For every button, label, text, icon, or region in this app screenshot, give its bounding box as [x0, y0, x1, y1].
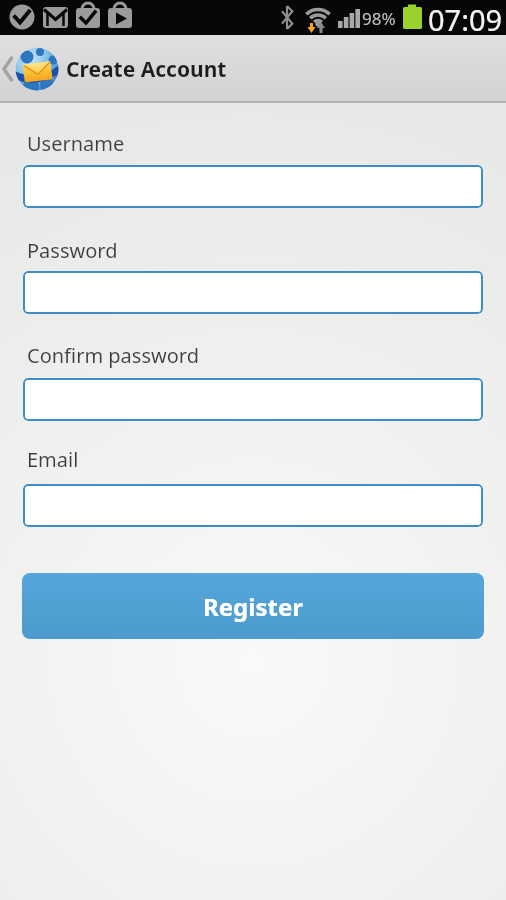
staticText: Username: [27, 130, 125, 157]
button[interactable]: Register: [22, 573, 484, 639]
staticText: Create Account: [66, 55, 227, 84]
staticText: Register: [203, 590, 303, 623]
staticText: Email: [27, 446, 79, 473]
button[interactable]: [23, 271, 483, 314]
staticText: 07:09: [428, 0, 503, 35]
staticText: Password: [27, 237, 118, 264]
button[interactable]: [23, 484, 483, 527]
button[interactable]: [23, 165, 483, 208]
button[interactable]: [23, 378, 483, 421]
staticText: 98%: [362, 7, 396, 30]
staticText: Confirm password: [27, 342, 199, 369]
button[interactable]: Create Account: [0, 35, 227, 103]
